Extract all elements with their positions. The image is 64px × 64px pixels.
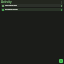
staticText: Evening walk <box>5 8 18 11</box>
staticText: Morning run <box>5 4 18 7</box>
button[interactable]: More options <box>60 1 63 4</box>
staticText: Activity <box>1 0 60 4</box>
button[interactable]: Add activity <box>59 59 63 63</box>
button[interactable]: Activity <box>0 0 64 4</box>
button[interactable]: Morning run <box>1 4 63 7</box>
button[interactable]: Evening walk <box>1 8 63 11</box>
